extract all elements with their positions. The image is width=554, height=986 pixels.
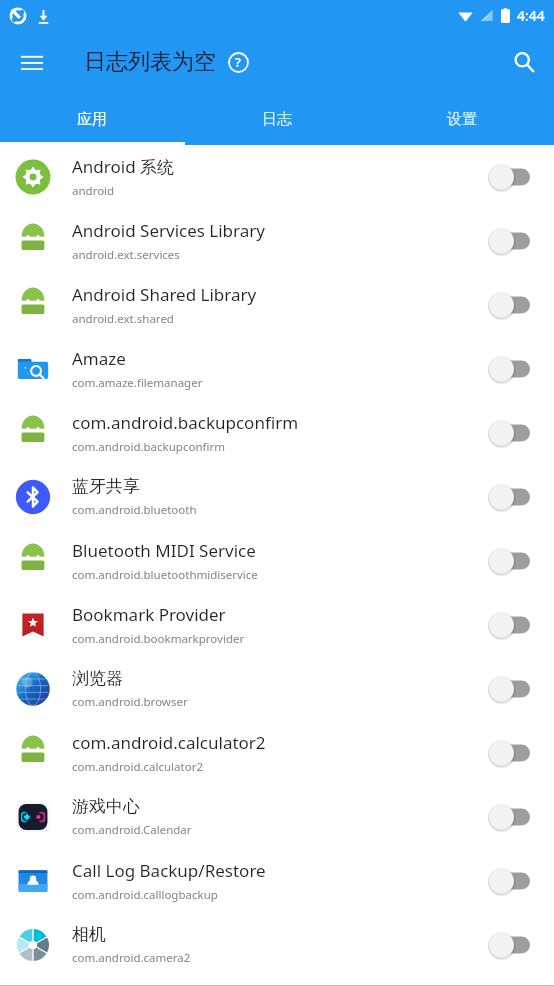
staticText: com.amaze.filemanager (72, 375, 203, 391)
staticText: 日志列表为空 (84, 48, 216, 76)
button[interactable]: Toggle app (486, 608, 538, 642)
staticText: com.android.backupconfirm (72, 439, 225, 455)
button[interactable]: Toggle app (486, 480, 538, 514)
staticText: com.android.calculator2 (72, 759, 203, 775)
staticText: com.android.bluetooth (72, 502, 197, 518)
button[interactable]: 应用 (0, 93, 184, 145)
staticText: 设置 (447, 110, 477, 129)
staticText: 相机 (72, 924, 106, 945)
staticText: 浏览器 (72, 668, 123, 689)
button[interactable]: Toggle app (486, 864, 538, 898)
staticText: com.android.Calendar (72, 822, 192, 838)
button[interactable]: 相机 (0, 913, 554, 977)
button[interactable]: Toggle app (486, 160, 538, 194)
button[interactable]: Open navigation menu (8, 38, 56, 86)
button[interactable]: 日志 (184, 93, 369, 145)
staticText: android (72, 183, 115, 199)
button[interactable]: Bookmark Provider (0, 593, 554, 657)
staticText: 游戏中心 (72, 796, 140, 817)
staticText: 蓝牙共享 (72, 476, 140, 497)
button[interactable]: 浏览器 (0, 657, 554, 721)
staticText: Bluetooth MIDI Service (72, 539, 256, 562)
button[interactable]: 设置 (369, 93, 554, 145)
staticText: com.android.calllogbackup (72, 887, 218, 903)
button[interactable]: Toggle app (486, 416, 538, 450)
staticText: 应用 (77, 110, 107, 129)
button[interactable]: Toggle app (486, 288, 538, 322)
staticText: Android 系统 (72, 155, 175, 178)
button[interactable]: Toggle app (486, 224, 538, 258)
button[interactable]: Toggle app (486, 672, 538, 706)
button[interactable]: Android Services Library (0, 209, 554, 273)
staticText: com.android.browser (72, 694, 188, 710)
button[interactable]: Amaze (0, 337, 554, 401)
staticText: Android Shared Library (72, 283, 257, 306)
staticText: Call Log Backup/Restore (72, 859, 266, 882)
button[interactable]: Bluetooth MIDI Service (0, 529, 554, 593)
button[interactable]: Toggle app (486, 352, 538, 386)
button[interactable]: Toggle app (486, 800, 538, 834)
button[interactable]: 游戏中心 (0, 785, 554, 849)
staticText: ? (235, 53, 241, 71)
button[interactable]: Help (224, 48, 252, 76)
staticText: com.android.bookmarkprovider (72, 631, 245, 647)
button[interactable]: 蓝牙共享 (0, 465, 554, 529)
staticText: com.android.bluetoothmidiservice (72, 567, 258, 583)
staticText: 日志 (262, 110, 292, 129)
staticText: android.ext.shared (72, 311, 174, 327)
button[interactable]: Toggle app (486, 928, 538, 962)
button[interactable]: Toggle app (486, 544, 538, 578)
staticText: com.android.calculator2 (72, 731, 266, 754)
staticText: com.android.camera2 (72, 950, 191, 966)
button[interactable]: Call Log Backup/Restore (0, 849, 554, 913)
button[interactable]: com.android.backupconfirm (0, 401, 554, 465)
button[interactable]: Android Shared Library (0, 273, 554, 337)
button[interactable]: Toggle app (486, 736, 538, 770)
staticText: Bookmark Provider (72, 603, 226, 626)
button[interactable]: com.android.calculator2 (0, 721, 554, 785)
staticText: Amaze (72, 347, 126, 370)
staticText: 4:44 (517, 6, 545, 25)
button[interactable]: Search (500, 38, 548, 86)
staticText: android.ext.services (72, 247, 180, 263)
button[interactable]: Android 系统 (0, 145, 554, 209)
staticText: Android Services Library (72, 219, 265, 242)
staticText: com.android.backupconfirm (72, 411, 299, 434)
